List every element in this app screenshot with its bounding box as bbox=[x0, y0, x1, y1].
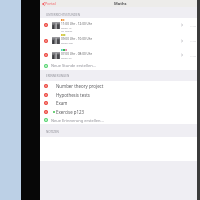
staticText: 07:00 Uhr - 08:00 Uhr bbox=[61, 52, 92, 56]
button[interactable]: Delete bbox=[40, 90, 197, 99]
other: Delete bbox=[44, 53, 48, 57]
staticText: 09:00 Uhr - 10:00 Uhr bbox=[61, 37, 92, 41]
button[interactable]: Delete bbox=[40, 81, 197, 90]
other: Delete bbox=[44, 84, 48, 88]
other: Add bbox=[44, 118, 48, 122]
button[interactable]: Delete bbox=[40, 48, 197, 62]
staticText: 11:00 bbox=[190, 39, 197, 42]
button[interactable]: Add bbox=[40, 116, 197, 124]
other: Add bbox=[44, 64, 48, 68]
staticText: 11:00 bbox=[190, 54, 197, 57]
staticText: Raum 34 bbox=[61, 56, 72, 59]
staticText: Raum 12 bbox=[61, 26, 72, 29]
other: Delete bbox=[44, 101, 48, 105]
button[interactable]: Portal bbox=[42, 1, 56, 6]
other: Details bbox=[181, 53, 183, 57]
staticText: Maths bbox=[114, 1, 127, 6]
other: Delete bbox=[44, 110, 48, 114]
staticText: Exam bbox=[56, 100, 194, 106]
button[interactable]: Add bbox=[40, 62, 197, 69]
staticText: Hypothesis tests bbox=[56, 92, 194, 98]
button[interactable]: Delete bbox=[40, 98, 197, 107]
button[interactable]: Delete bbox=[40, 33, 197, 48]
staticText: Exercise p123 bbox=[56, 109, 194, 115]
staticText: NOTIZEN bbox=[46, 130, 59, 134]
staticText: ERINNERUNGEN bbox=[46, 74, 70, 78]
staticText: Hr. Müller bbox=[61, 29, 73, 32]
staticText: 11:00 Uhr - 12:00 Uhr bbox=[61, 22, 92, 26]
other: Delete bbox=[44, 93, 48, 97]
staticText: Portal bbox=[45, 1, 56, 6]
staticText: 11:00 bbox=[190, 24, 197, 27]
other: Delete bbox=[44, 23, 48, 27]
staticText: UNTERRICHTSSTUNDEN bbox=[46, 13, 80, 17]
staticText: Raum 208 bbox=[61, 41, 73, 44]
other: Details bbox=[181, 23, 183, 27]
staticText: Neue Erinnerung erstellen... bbox=[51, 118, 104, 123]
other: Delete bbox=[44, 39, 48, 43]
staticText: Number theory project bbox=[56, 83, 194, 89]
button[interactable]: Delete bbox=[40, 18, 197, 32]
other: Details bbox=[181, 39, 183, 43]
staticText: Neue Stunde erstellen... bbox=[51, 63, 96, 68]
button[interactable]: Delete bbox=[40, 107, 197, 116]
